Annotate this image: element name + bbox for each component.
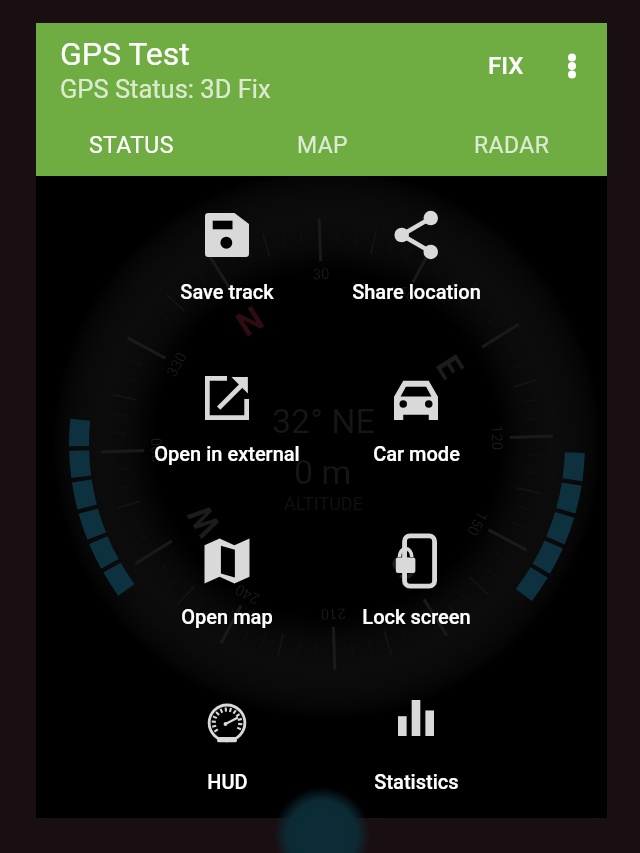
button[interactable]: RADAR [417, 115, 607, 176]
button[interactable]: STATUS [36, 115, 227, 176]
staticText: Open in external [154, 442, 300, 465]
button[interactable]: HUD [127, 678, 327, 800]
staticText: Statistics [374, 770, 459, 793]
staticText: RADAR [474, 132, 550, 159]
staticText: 32° NE [272, 401, 375, 441]
button[interactable]: Car mode [316, 354, 516, 472]
staticText: GPS Test [60, 35, 190, 73]
button[interactable]: Open in external [127, 352, 327, 472]
staticText: GPS Status: 3D Fix [60, 74, 271, 104]
button[interactable]: FIX [476, 42, 536, 90]
button[interactable]: More options [544, 38, 600, 94]
button[interactable]: Statistics [316, 672, 516, 800]
staticText: FIX [488, 52, 524, 80]
staticText: STATUS [89, 132, 174, 159]
button[interactable]: Save track [127, 189, 327, 310]
staticText: 0 m [294, 452, 352, 492]
staticText: HUD [207, 770, 248, 793]
staticText: Share location [352, 280, 481, 303]
button[interactable]: MAP [227, 115, 417, 176]
button[interactable]: Lock screen [316, 515, 516, 635]
staticText: Car mode [373, 442, 460, 465]
staticText: MAP [297, 132, 348, 159]
button[interactable]: Open map [127, 515, 327, 635]
staticText: ALTITUDE [284, 493, 363, 514]
button[interactable]: Share location [316, 189, 516, 310]
staticText: Save track [180, 280, 274, 303]
staticText: Open map [181, 605, 273, 628]
staticText: Lock screen [362, 605, 471, 628]
